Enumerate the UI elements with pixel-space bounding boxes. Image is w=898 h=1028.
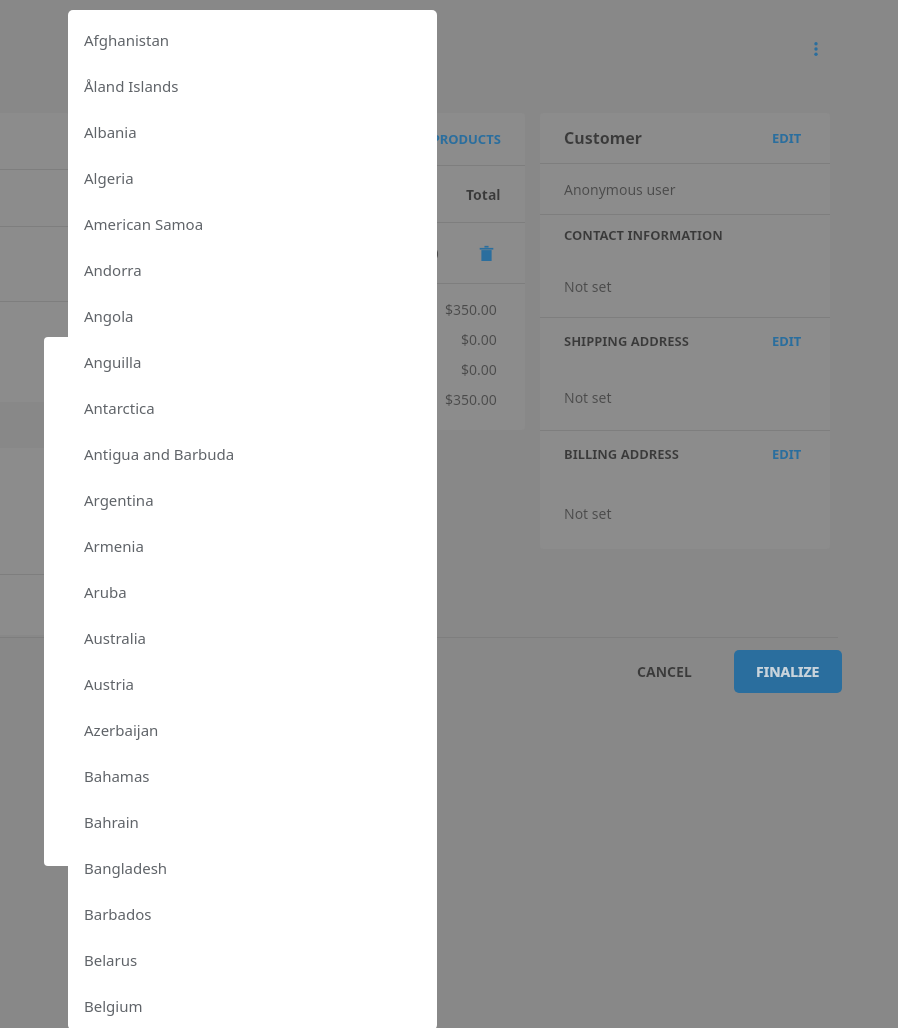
staticText: Australia (84, 628, 146, 648)
button[interactable]: Austria (68, 661, 437, 707)
button[interactable]: Antigua and Barbuda (68, 431, 437, 477)
staticText: Antarctica (84, 398, 155, 418)
staticText: SHIPPING ADDRESS (564, 332, 689, 350)
staticText: Not set (564, 504, 612, 523)
button[interactable]: Barbados (68, 891, 437, 937)
button[interactable]: Antarctica (68, 385, 437, 431)
staticText: Not set (564, 277, 612, 296)
staticText: Anonymous user (564, 180, 676, 199)
button[interactable]: Bahrain (68, 799, 437, 845)
button[interactable]: Belgium (68, 983, 437, 1028)
button[interactable]: Belarus (68, 937, 437, 983)
button[interactable]: CONTACT INFORMATION (540, 215, 830, 255)
staticText: Belarus (84, 950, 138, 970)
button[interactable]: American Samoa (68, 201, 437, 247)
staticText: Algeria (84, 168, 134, 188)
staticText: $350.00 (387, 244, 439, 263)
staticText: Total (466, 185, 501, 204)
staticText: FINALIZE (756, 662, 820, 681)
button[interactable]: CANCEL (621, 652, 708, 691)
staticText: Andorra (84, 260, 142, 280)
staticText: Anguilla (84, 352, 142, 372)
button[interactable]: Anguilla (68, 339, 437, 385)
staticText: Angola (84, 306, 134, 326)
button[interactable]: EDIT (768, 125, 806, 151)
staticText: Albania (84, 122, 137, 142)
staticText: $0.00 (461, 360, 497, 379)
button[interactable]: Australia (68, 615, 437, 661)
staticText: $350.00 (445, 300, 497, 319)
staticText: $350.00 (445, 390, 497, 409)
button[interactable]: Armenia (68, 523, 437, 569)
staticText: Belgium (84, 996, 143, 1016)
button[interactable]: Bahamas (68, 753, 437, 799)
button[interactable]: EDIT (768, 328, 806, 354)
staticText: MANAGE PRODUCTS (371, 130, 501, 148)
staticText: $0.00 (461, 330, 497, 349)
button[interactable]: Aruba (68, 569, 437, 615)
staticText: Azerbaijan (84, 720, 159, 740)
button[interactable]: Azerbaijan (68, 707, 437, 753)
staticText: EDIT (772, 445, 802, 463)
staticText: BILLING ADDRESS (564, 445, 679, 463)
button[interactable]: Argentina (68, 477, 437, 523)
button[interactable]: MANAGE PRODUCTS (150, 113, 525, 165)
staticText: Austria (84, 674, 134, 694)
staticText: Bangladesh (84, 858, 168, 878)
button[interactable]: Delete (471, 238, 501, 268)
staticText: EDIT (772, 332, 802, 350)
button[interactable]: EDIT (768, 441, 806, 467)
staticText: American Samoa (84, 214, 204, 234)
button[interactable]: BILLING ADDRESS (540, 431, 830, 477)
staticText: Antigua and Barbuda (84, 444, 235, 464)
button[interactable]: FINALIZE (734, 650, 842, 693)
button[interactable]: Customer (540, 113, 830, 163)
staticText: Not set (564, 388, 612, 407)
staticText: Customer (564, 127, 642, 149)
staticText: Åland Islands (84, 76, 179, 96)
staticText: CONTACT INFORMATION (564, 226, 723, 244)
staticText: Barbados (84, 904, 152, 924)
button[interactable]: Åland Islands (68, 63, 437, 109)
button[interactable]: Bangladesh (68, 845, 437, 891)
staticText: Aruba (84, 582, 127, 602)
staticText: Armenia (84, 536, 144, 556)
staticText: Argentina (84, 490, 154, 510)
button[interactable]: Algeria (68, 155, 437, 201)
staticText: Afghanistan (84, 30, 170, 50)
staticText: EDIT (772, 129, 802, 147)
button[interactable]: More options (795, 28, 837, 70)
staticText: Bahrain (84, 812, 139, 832)
button[interactable]: Andorra (68, 247, 437, 293)
button[interactable]: Afghanistan (68, 17, 437, 63)
button[interactable]: Albania (68, 109, 437, 155)
button[interactable]: SHIPPING ADDRESS (540, 318, 830, 364)
staticText: CANCEL (637, 662, 692, 681)
button[interactable]: Angola (68, 293, 437, 339)
staticText: Bahamas (84, 766, 150, 786)
